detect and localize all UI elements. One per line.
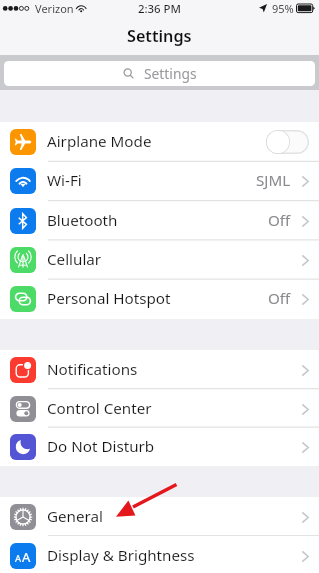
staticText: Wi-Fi <box>47 170 82 191</box>
staticText: Verizon <box>35 1 74 16</box>
button[interactable]: Wi-Fi <box>0 161 319 200</box>
staticText: 95% <box>272 1 294 16</box>
staticText: Settings <box>127 25 192 47</box>
staticText: 2:36 PM <box>0 1 319 17</box>
button[interactable]: General <box>0 497 319 536</box>
staticText: Settings <box>144 64 197 83</box>
button[interactable]: Airplane Mode <box>0 122 319 161</box>
staticText: A <box>22 548 31 566</box>
staticText: General <box>47 506 103 527</box>
other: Airplane Mode toggle <box>266 130 309 154</box>
staticText: Display & Brightness <box>47 545 195 566</box>
staticText: SJML <box>256 170 291 191</box>
staticText: Notifications <box>47 359 138 380</box>
button[interactable]: Cellular <box>0 240 319 279</box>
button[interactable]: Do Not Disturb <box>0 427 319 466</box>
button[interactable]: A <box>0 536 319 573</box>
button[interactable]: Bluetooth <box>0 201 319 240</box>
staticText: Airplane Mode <box>47 131 152 152</box>
button[interactable]: Settings <box>4 61 315 86</box>
button[interactable]: Notifications <box>0 350 319 389</box>
staticText: Do Not Disturb <box>47 436 155 457</box>
staticText: Bluetooth <box>47 210 118 231</box>
staticText: Cellular <box>47 249 102 270</box>
staticText: Off <box>268 288 291 309</box>
staticText: Off <box>268 210 291 231</box>
staticText: Personal Hotspot <box>47 288 171 309</box>
staticText: Control Center <box>47 398 152 419</box>
button[interactable]: Control Center <box>0 389 319 428</box>
staticText: A <box>15 552 22 565</box>
button[interactable]: Personal Hotspot <box>0 279 319 318</box>
